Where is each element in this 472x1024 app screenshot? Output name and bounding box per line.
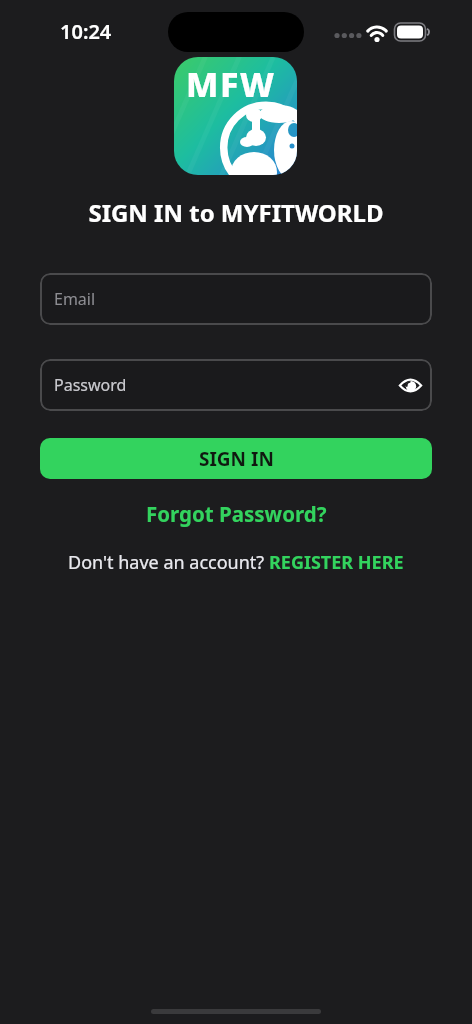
button[interactable]: Password	[40, 359, 432, 411]
button[interactable]: REGISTER HERE	[269, 550, 404, 575]
button[interactable]: Email	[40, 273, 432, 325]
staticText: Email	[54, 288, 96, 310]
staticText: 10:24	[60, 18, 112, 45]
staticText: MFW	[186, 61, 276, 107]
staticText: Password	[54, 374, 127, 396]
staticText: Don't have an account?	[68, 550, 269, 575]
staticText: Forgot Password?	[146, 500, 327, 528]
staticText: SIGN IN to MYFITWORLD	[0, 196, 472, 229]
staticText: SIGN IN	[199, 446, 274, 472]
button[interactable]	[393, 368, 427, 402]
staticText: REGISTER HERE	[269, 550, 404, 575]
button[interactable]: SIGN IN	[40, 438, 432, 479]
button[interactable]: Forgot Password?	[146, 500, 327, 528]
